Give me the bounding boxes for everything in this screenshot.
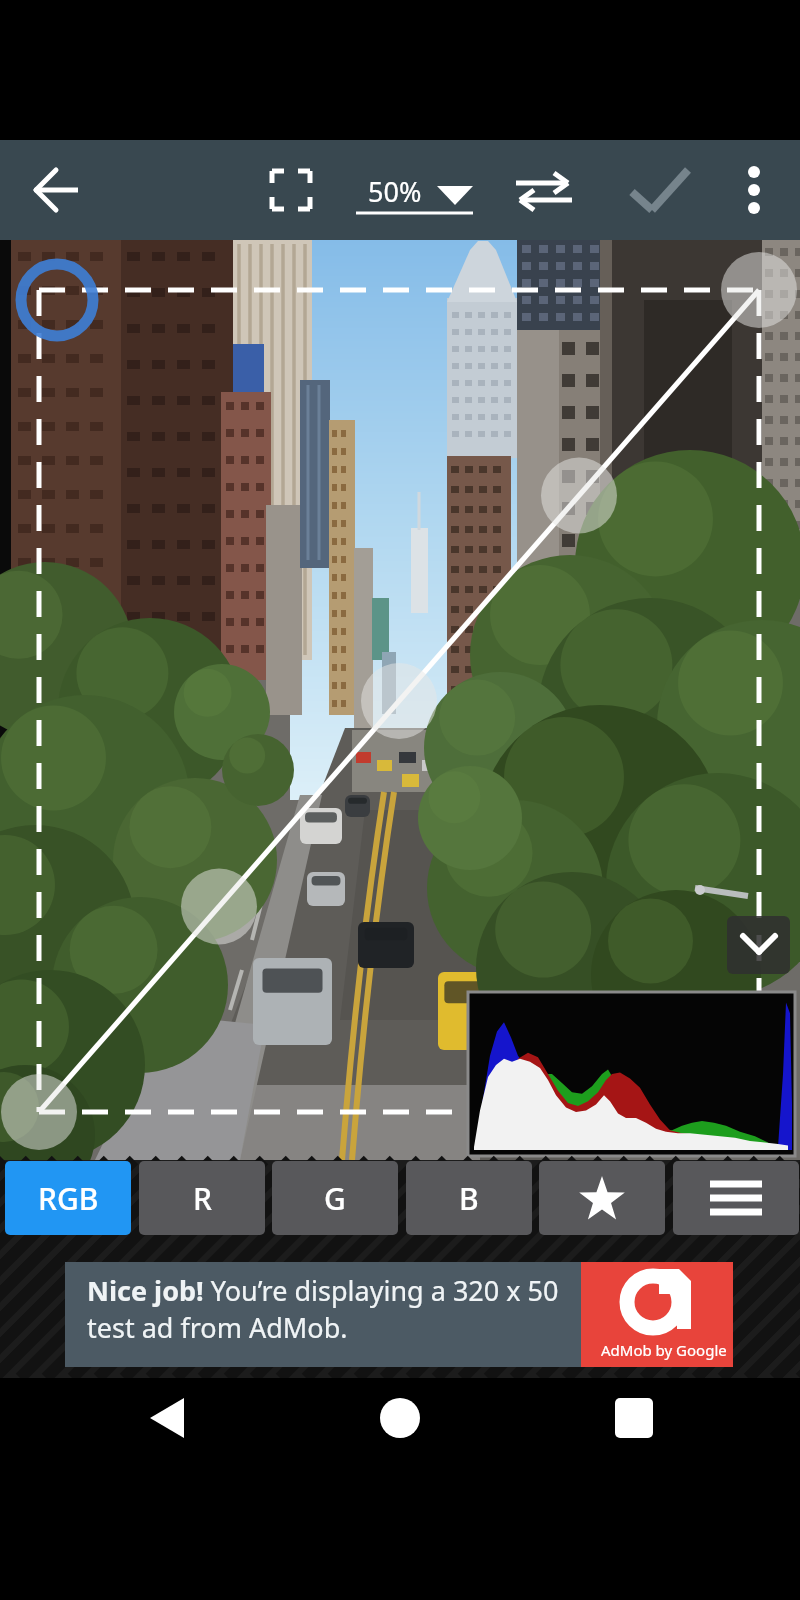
- button[interactable]: [130, 1378, 240, 1458]
- button[interactable]: Nice job! You’re displaying a 320 x 50 t…: [65, 1262, 733, 1367]
- button[interactable]: [350, 154, 480, 226]
- button[interactable]: [673, 1161, 799, 1235]
- staticText: G: [324, 1178, 346, 1219]
- staticText: RGB: [38, 1178, 99, 1219]
- button[interactable]: [718, 154, 790, 226]
- staticText: AdMob by Google: [601, 1340, 727, 1360]
- staticText: R: [193, 1178, 212, 1219]
- staticText: Nice job! You’re displaying a 320 x 50 t…: [87, 1272, 559, 1346]
- button[interactable]: [505, 154, 585, 226]
- staticText: 50%: [368, 173, 422, 210]
- button[interactable]: [727, 916, 790, 974]
- button[interactable]: [20, 154, 92, 226]
- button[interactable]: G: [272, 1161, 398, 1235]
- button[interactable]: [255, 154, 327, 226]
- button[interactable]: [345, 1378, 455, 1458]
- button[interactable]: [539, 1161, 665, 1235]
- button[interactable]: RGB: [5, 1161, 131, 1235]
- button[interactable]: [560, 1378, 670, 1458]
- button[interactable]: [620, 154, 700, 226]
- button[interactable]: R: [139, 1161, 265, 1235]
- button[interactable]: B: [406, 1161, 532, 1235]
- staticText: B: [459, 1178, 479, 1219]
